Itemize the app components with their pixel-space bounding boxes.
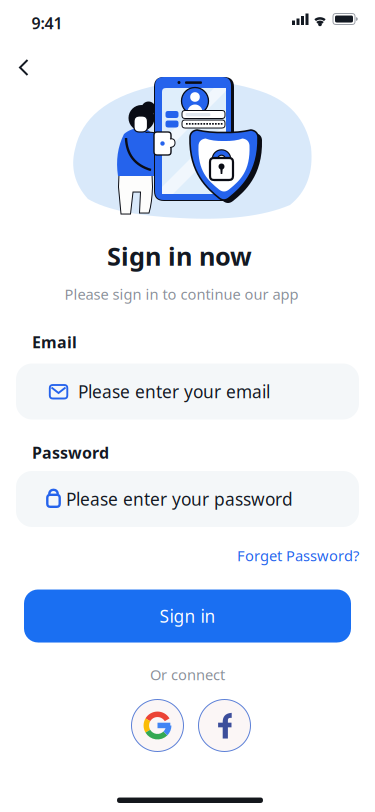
staticText: Please enter your email bbox=[78, 380, 270, 403]
staticText: Or connect bbox=[150, 665, 225, 684]
staticText: Email bbox=[32, 331, 77, 353]
button[interactable]: Back bbox=[0, 48, 38, 76]
staticText: Password bbox=[32, 442, 109, 463]
button[interactable]: Sign in bbox=[24, 589, 351, 642]
staticText: 9:41 bbox=[31, 12, 62, 34]
staticText: Please sign in to continue our app bbox=[64, 284, 298, 304]
button[interactable]: Sign in with Google bbox=[131, 699, 183, 751]
staticText: Sign in bbox=[159, 604, 215, 627]
staticText: Please enter your password bbox=[66, 487, 293, 510]
button[interactable]: Forget Password? bbox=[237, 546, 359, 565]
staticText: Sign in now bbox=[107, 239, 252, 273]
button[interactable]: Please enter your password bbox=[16, 471, 359, 527]
button[interactable]: Sign in with Facebook bbox=[198, 699, 250, 751]
staticText: Forget Password? bbox=[237, 546, 359, 565]
button[interactable]: Please enter your email bbox=[16, 363, 359, 419]
